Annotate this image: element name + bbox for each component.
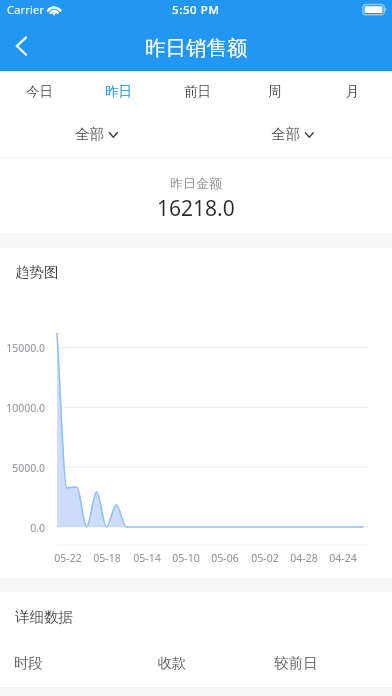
button[interactable]: 时段 [0,642,392,687]
staticText: 05-18 [85,551,129,565]
staticText: 05-14 [125,551,169,565]
staticText: 0.0 [0,521,45,535]
staticText: 05-10 [164,551,208,565]
staticText: 前日 [184,83,211,100]
staticText: 详细数据 [15,608,73,626]
staticText: 较前日 [254,654,338,672]
staticText: 昨日 [105,83,132,100]
staticText: 16218.0 [157,194,235,223]
staticText: 04-28 [282,551,326,565]
staticText: 10000.0 [0,401,45,415]
button[interactable]: Back [1,27,43,69]
staticText: 时段 [14,654,43,672]
staticText: 昨日销售额 [145,35,248,61]
button[interactable]: 月 [314,71,392,111]
staticText: 今日 [26,83,53,100]
staticText: 5:50 PM [172,2,220,18]
staticText: 5000.0 [0,461,45,475]
staticText: 周 [268,83,282,100]
staticText: 05-06 [203,551,247,565]
staticText: 05-02 [243,551,287,565]
button[interactable]: 周 [236,71,314,111]
button[interactable]: 昨日 [79,71,158,111]
staticText: Carrier [7,2,45,17]
staticText: 月 [346,83,360,100]
staticText: 收款 [130,654,214,672]
button[interactable]: 前日 [158,71,236,111]
button[interactable]: 全部 [196,111,392,157]
button[interactable]: 今日 [0,71,79,111]
button[interactable]: 全部 [0,111,196,157]
staticText: 趋势图 [15,263,59,281]
staticText: 昨日金额 [170,175,222,191]
staticText: 04-24 [321,551,365,565]
staticText: 全部 [271,125,300,143]
staticText: 05-22 [46,551,90,565]
staticText: 全部 [75,125,104,143]
staticText: 15000.0 [0,341,45,355]
